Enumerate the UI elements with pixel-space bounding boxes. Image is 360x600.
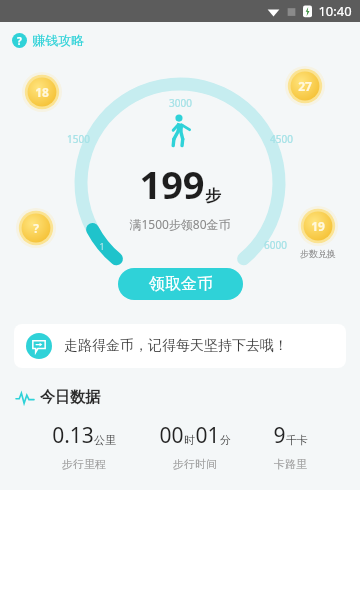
staticText: ? (17, 34, 22, 48)
staticText: 步数兑换 (300, 248, 336, 259)
staticText: 满1500步领80金币 (129, 216, 231, 232)
staticText: 19 (311, 218, 325, 234)
button[interactable]: 领取金币 (118, 268, 243, 300)
staticText: 00 (159, 421, 184, 450)
staticText: ? (33, 220, 39, 236)
staticText: 6000 (264, 238, 287, 252)
staticText: 199 (139, 158, 205, 210)
staticText: 卡路里 (274, 457, 307, 471)
staticText: 9 (273, 421, 286, 450)
staticText: 27 (298, 78, 312, 94)
staticText: 步行里程 (62, 457, 106, 471)
button[interactable]: 金币 27 (285, 66, 325, 106)
staticText: 1 (99, 240, 105, 252)
staticText: 千卡 (286, 433, 308, 447)
staticText: 步行时间 (173, 457, 217, 471)
staticText: 1500 (67, 132, 90, 146)
staticText: 领取金币 (149, 274, 213, 294)
staticText: 4500 (270, 132, 293, 146)
staticText: 公里 (94, 433, 116, 447)
staticText: 10:40 (318, 2, 352, 20)
staticText: 18 (35, 84, 49, 100)
button[interactable]: ? (12, 22, 360, 58)
staticText: 分 (220, 433, 231, 447)
staticText: 3000 (169, 96, 192, 110)
staticText: 步 (205, 186, 221, 206)
button[interactable]: 金币 ? (16, 208, 56, 248)
staticText: 赚钱攻略 (32, 32, 84, 48)
staticText: 时 (184, 433, 195, 447)
staticText: 今日数据 (40, 388, 100, 407)
staticText: 01 (195, 421, 220, 450)
staticText: 走路得金币，记得每天坚持下去哦！ (64, 337, 288, 355)
staticText: 0.13 (52, 421, 94, 450)
button[interactable]: 走路得金币，记得每天坚持下去哦！ (14, 324, 346, 368)
button[interactable]: 金币 19 (298, 206, 338, 246)
button[interactable]: 金币 18 (22, 72, 62, 112)
